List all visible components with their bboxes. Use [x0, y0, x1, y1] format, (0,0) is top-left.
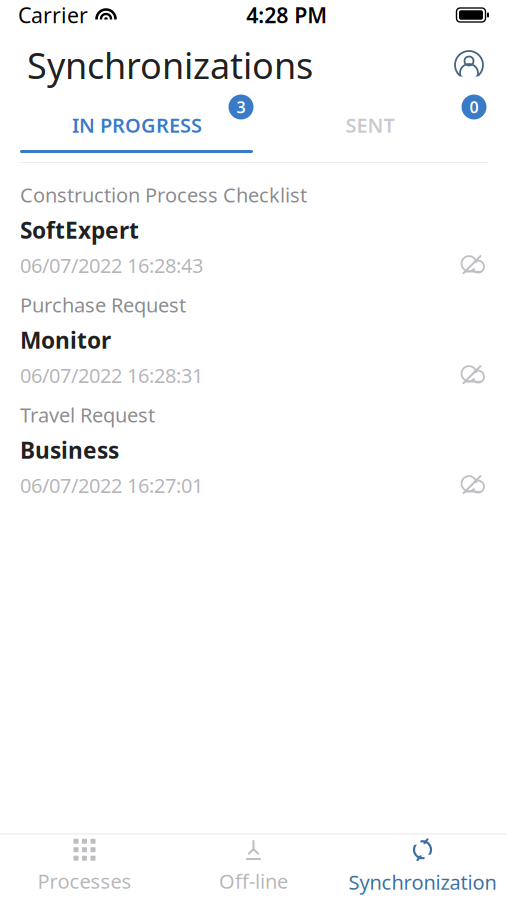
staticText: Travel Request — [20, 401, 155, 428]
button[interactable]: Synchronization — [338, 834, 507, 898]
button[interactable]: Purchase Request — [0, 285, 507, 395]
staticText: 0 — [469, 96, 478, 118]
button[interactable]: Account — [447, 43, 491, 87]
button[interactable]: Construction Process Checklist — [0, 175, 507, 285]
button[interactable]: SENT — [253, 100, 486, 150]
staticText: Business — [20, 435, 119, 465]
staticText: 3 — [236, 96, 245, 118]
staticText: 4:28 PM — [246, 1, 327, 29]
staticText: Processes — [37, 868, 131, 894]
staticText: Construction Process Checklist — [20, 181, 307, 208]
staticText: Monitor — [20, 325, 111, 355]
staticText: Off-line — [219, 868, 288, 894]
staticText: IN PROGRESS — [72, 112, 202, 138]
button[interactable]: IN PROGRESS — [20, 100, 253, 150]
staticText: SENT — [345, 112, 394, 138]
staticText: 06/07/2022 16:28:31 — [20, 362, 203, 389]
staticText: Purchase Request — [20, 291, 186, 318]
staticText: SoftExpert — [20, 215, 139, 245]
button[interactable]: Off-line — [169, 834, 338, 898]
staticText: Synchronizations — [27, 41, 313, 89]
staticText: 06/07/2022 16:28:43 — [20, 252, 203, 279]
staticText: Carrier — [18, 1, 88, 29]
button[interactable]: Travel Request — [0, 395, 507, 505]
staticText: 06/07/2022 16:27:01 — [20, 472, 203, 499]
button[interactable]: Processes — [0, 834, 169, 898]
staticText: Synchronization — [348, 869, 496, 895]
